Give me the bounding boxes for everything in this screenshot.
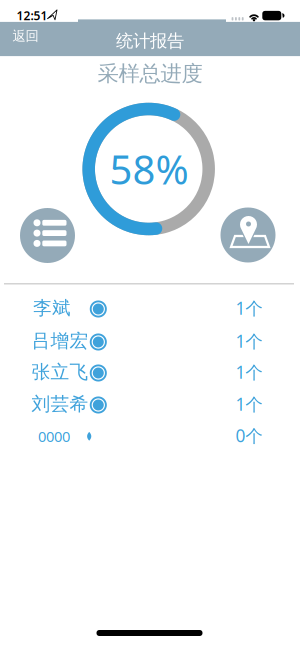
button[interactable]: 地图 [220,207,275,262]
staticText: 0个 [235,424,262,447]
button[interactable]: 张立飞 [0,355,300,388]
staticText: 1个 [235,296,262,319]
button[interactable]: 李斌 [0,291,300,324]
staticText: 0000 [38,427,70,446]
button[interactable]: 列表 [20,208,75,263]
staticText: 12:51 [16,7,47,23]
button[interactable]: 返回 [9,24,41,48]
staticText: 1个 [235,360,262,383]
staticText: 李斌 [33,296,71,319]
staticText: 统计报告 [116,30,184,52]
staticText: 58% [109,142,188,195]
staticText: 采样总进度 [97,61,202,87]
button[interactable]: 吕增宏 [0,324,300,357]
staticText: 返回 [12,28,38,44]
button[interactable]: 刘芸希 [0,387,300,420]
staticText: 1个 [235,329,262,352]
staticText: 吕增宏 [31,329,88,352]
staticText: 刘芸希 [31,392,88,415]
staticText: 1个 [235,392,262,415]
staticText: 张立飞 [31,360,88,383]
button[interactable]: 0000 [0,419,300,452]
